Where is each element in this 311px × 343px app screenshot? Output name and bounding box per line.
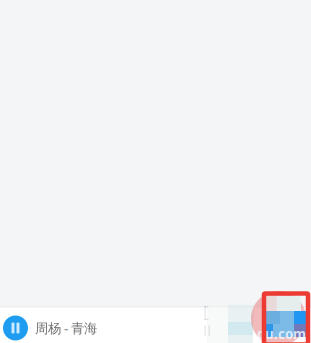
button[interactable]: Pause [2,312,29,343]
button[interactable]: Playlist [277,312,311,343]
staticText: 周杨 - 青海 [35,319,97,337]
staticText: du.com [257,325,306,343]
